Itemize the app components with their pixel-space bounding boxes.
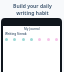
staticText: writing habit — [16, 10, 49, 17]
staticText: Build your daily — [13, 3, 52, 10]
staticText: My Journal — [24, 27, 40, 31]
staticText: Writing Streak — [5, 32, 27, 36]
